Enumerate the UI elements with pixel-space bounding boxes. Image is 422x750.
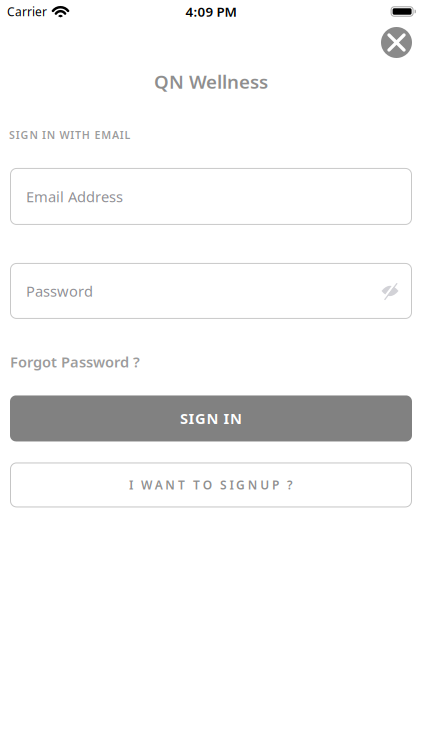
button[interactable]: SIGN IN xyxy=(10,395,412,441)
staticText: QN Wellness xyxy=(154,69,268,94)
staticText: Forgot Password ? xyxy=(10,352,140,371)
button[interactable]: Password xyxy=(10,263,412,319)
button[interactable]: Forgot Password ? xyxy=(10,352,140,371)
staticText: Password xyxy=(26,281,93,301)
staticText: SIGN IN xyxy=(180,409,242,428)
button[interactable]: I WANT TO SIGNUP ? xyxy=(10,462,412,507)
staticText: SIGN IN WITH EMAIL xyxy=(9,128,131,142)
staticText: Carrier xyxy=(7,3,47,19)
staticText: Email Address xyxy=(26,187,123,206)
button[interactable]: Close xyxy=(381,27,412,58)
staticText: 4:09 PM xyxy=(185,3,236,20)
button[interactable]: Email Address xyxy=(10,168,412,225)
staticText: I WANT TO SIGNUP ? xyxy=(129,477,293,493)
